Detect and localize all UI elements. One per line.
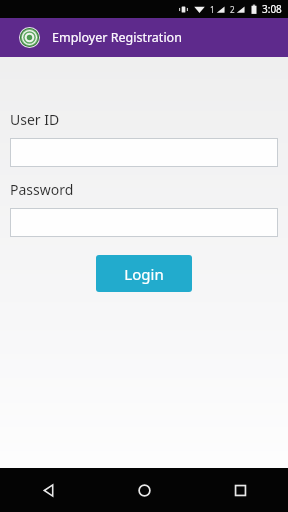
button[interactable]: Recent apps [192, 468, 288, 512]
staticText: 2 [230, 4, 235, 15]
button[interactable]: Login [96, 255, 192, 292]
button[interactable] [10, 208, 278, 237]
button[interactable] [10, 138, 278, 167]
other: App logo [19, 27, 40, 48]
staticText: 1 [210, 4, 215, 15]
staticText: User ID [10, 110, 60, 129]
button[interactable]: Home [96, 468, 192, 512]
staticText: Password [10, 180, 74, 199]
staticText: Employer Registration [52, 29, 182, 46]
staticText: 3:08 [262, 2, 282, 16]
button[interactable]: Back [0, 468, 96, 512]
staticText: Login [124, 264, 164, 284]
